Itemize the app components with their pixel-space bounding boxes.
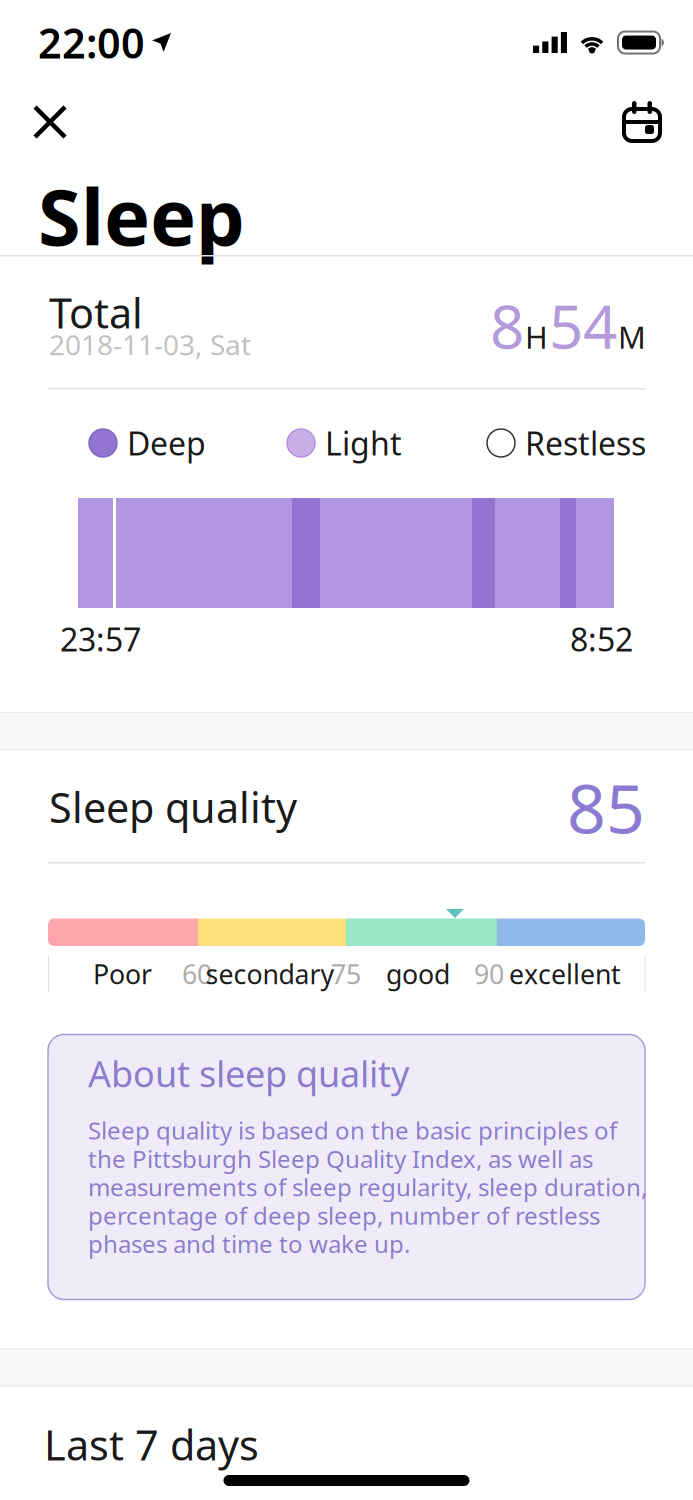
staticText: 2018-11-03, Sat: [49, 326, 251, 363]
button[interactable]: Calendar: [623, 101, 661, 143]
staticText: 54: [549, 286, 617, 365]
staticText: M: [618, 316, 646, 357]
staticText: 8:52: [570, 618, 633, 660]
staticText: good: [386, 956, 450, 992]
staticText: Restless: [525, 422, 646, 464]
staticText: Sleep: [38, 164, 245, 267]
staticText: Sleep quality is based on the basic prin…: [88, 1114, 647, 1260]
staticText: 60: [182, 956, 212, 992]
staticText: Total: [49, 285, 143, 340]
staticText: H: [525, 316, 548, 357]
staticText: Deep: [127, 422, 206, 464]
staticText: 23:57: [60, 618, 141, 660]
staticText: 85: [567, 762, 645, 852]
staticText: Sleep quality: [49, 780, 297, 834]
staticText: 8: [490, 286, 524, 365]
staticText: secondary: [205, 956, 334, 992]
staticText: 22:00: [38, 15, 145, 70]
staticText: excellent: [509, 956, 621, 992]
staticText: About sleep quality: [88, 1049, 409, 1097]
staticText: 90: [474, 956, 504, 992]
staticText: Last 7 days: [44, 1417, 259, 1472]
staticText: Light: [325, 422, 402, 464]
staticText: Poor: [93, 956, 152, 992]
button[interactable]: Close: [35, 107, 65, 137]
staticText: 75: [331, 956, 361, 992]
